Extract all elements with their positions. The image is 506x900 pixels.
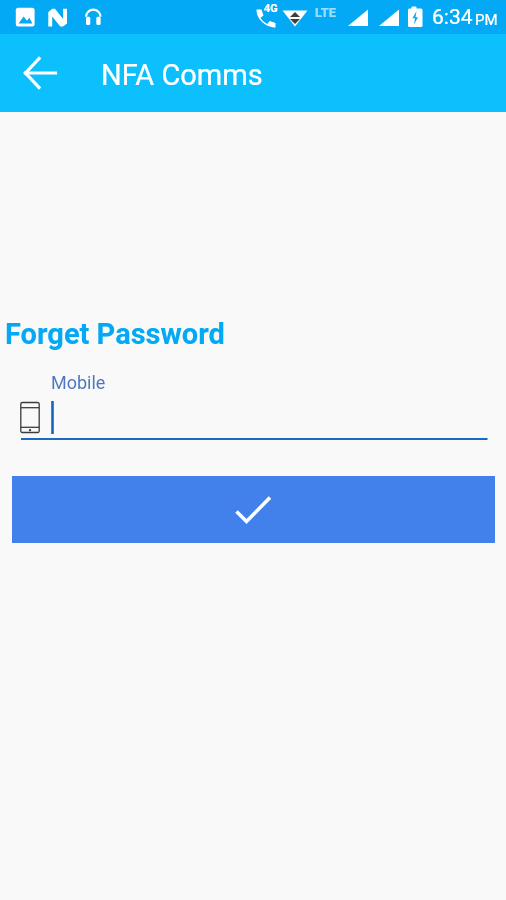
staticText: 4G xyxy=(264,2,278,15)
button[interactable]: Navigate up xyxy=(10,34,70,112)
staticText: NFA Comms xyxy=(101,58,263,92)
button[interactable]: Submit xyxy=(12,476,495,543)
staticText: 6:34 xyxy=(432,5,473,30)
button[interactable]: Mobile number field xyxy=(0,396,506,446)
staticText: PM xyxy=(475,11,498,29)
staticText: Forget Password xyxy=(5,317,225,351)
staticText: Mobile xyxy=(51,372,106,393)
staticText: LTE xyxy=(315,5,337,20)
